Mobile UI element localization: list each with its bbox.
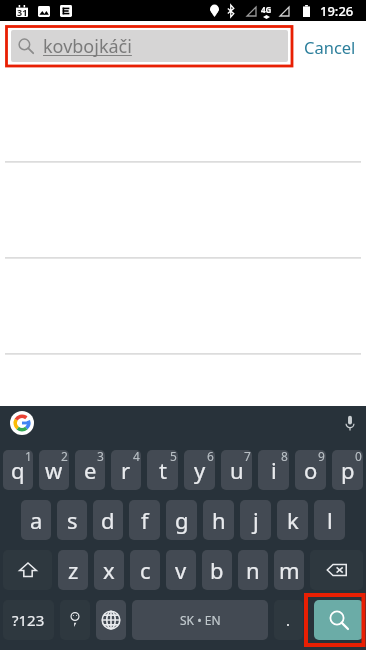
staticText: k [287, 505, 299, 535]
button[interactable]: z [58, 550, 88, 590]
staticText: kovbojkáči [43, 34, 132, 59]
button[interactable]: Emoji [60, 600, 90, 640]
button[interactable]: n [238, 550, 268, 590]
button[interactable]: Space [132, 600, 268, 640]
button[interactable]: g [166, 500, 197, 540]
button[interactable]: Cancel [304, 36, 356, 58]
button[interactable]: o [295, 450, 326, 490]
staticText: h [212, 505, 226, 535]
button[interactable]: Backspace [310, 550, 363, 590]
staticText: 8 [281, 450, 288, 464]
button[interactable]: Voice input [343, 414, 357, 432]
staticText: u [230, 455, 244, 485]
button[interactable]: c [130, 550, 160, 590]
button[interactable]: v [166, 550, 196, 590]
staticText: v [175, 555, 187, 585]
staticText: . [286, 610, 291, 630]
staticText: 31 [17, 6, 28, 18]
staticText: s [67, 505, 78, 535]
staticText: x [103, 555, 115, 585]
staticText: g [175, 505, 189, 535]
staticText: f [141, 505, 149, 535]
button[interactable]: r [111, 450, 141, 490]
staticText: n [246, 555, 260, 585]
staticText: SK • EN [180, 612, 221, 628]
staticText: l [327, 505, 333, 535]
staticText: j [253, 505, 259, 535]
button[interactable]: t [147, 450, 178, 490]
staticText: 7 [244, 450, 251, 464]
button[interactable]: u [221, 450, 252, 490]
staticText: 1 [25, 450, 32, 464]
button[interactable]: b [202, 550, 232, 590]
staticText: b [210, 555, 224, 585]
staticText: o [304, 455, 318, 485]
staticText: c [140, 555, 151, 585]
button[interactable]: i [258, 450, 289, 490]
button[interactable]: p [332, 450, 363, 490]
button[interactable]: l [314, 500, 345, 540]
staticText: r [121, 455, 131, 485]
staticText: 5 [170, 450, 177, 464]
button[interactable]: kovbojkáči [11, 30, 288, 62]
button[interactable]: w [39, 450, 69, 490]
staticText: y [194, 455, 206, 485]
button[interactable]: k [277, 500, 308, 540]
staticText: 3 [97, 450, 104, 464]
staticText: d [101, 505, 115, 535]
staticText: t [159, 455, 167, 485]
staticText: e [84, 455, 97, 485]
staticText: p [341, 455, 355, 485]
button[interactable]: e [75, 450, 105, 490]
staticText: z [68, 555, 79, 585]
button[interactable]: Shift [3, 550, 52, 590]
button[interactable]: y [184, 450, 215, 490]
staticText: 4 [133, 450, 140, 464]
staticText: 0 [355, 450, 362, 464]
staticText: q [11, 455, 25, 485]
button[interactable]: m [274, 550, 304, 590]
button[interactable]: Language [96, 600, 126, 640]
staticText: i [271, 455, 277, 485]
staticText: 19:26 [320, 2, 354, 20]
button[interactable]: x [94, 550, 124, 590]
button[interactable]: . [274, 600, 303, 640]
button[interactable]: h [203, 500, 234, 540]
button[interactable]: d [93, 500, 123, 540]
button[interactable]: ?123 [3, 600, 54, 640]
staticText: 9 [318, 450, 325, 464]
staticText: Cancel [304, 36, 356, 58]
staticText: 4G [261, 4, 272, 15]
button[interactable]: a [21, 500, 51, 540]
staticText: 2 [61, 450, 68, 464]
button[interactable]: Search [314, 600, 363, 640]
staticText: m [279, 555, 300, 585]
staticText: 6 [207, 450, 214, 464]
staticText: a [30, 505, 43, 535]
button[interactable]: f [129, 500, 160, 540]
button[interactable]: j [240, 500, 271, 540]
button[interactable]: s [57, 500, 87, 540]
button[interactable]: q [3, 450, 33, 490]
staticText: ?123 [12, 610, 45, 630]
staticText: w [45, 455, 63, 485]
button[interactable]: Google [10, 411, 34, 435]
